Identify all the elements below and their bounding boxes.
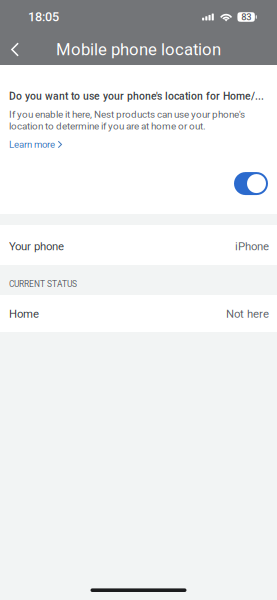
- staticText: Home: [9, 307, 39, 321]
- staticText: 18:05: [28, 10, 59, 24]
- staticText: iPhone: [235, 240, 269, 253]
- button[interactable]: Back: [0, 34, 30, 65]
- staticText: Your phone: [9, 240, 64, 253]
- button[interactable]: Use phone location: [234, 172, 268, 195]
- staticText: Not here: [226, 307, 269, 321]
- staticText: Mobile phone location: [56, 40, 221, 59]
- staticText: 83: [241, 11, 251, 22]
- staticText: Learn more: [9, 139, 55, 150]
- button[interactable]: Learn more: [9, 132, 62, 150]
- button[interactable]: Home: [0, 295, 277, 332]
- staticText: If you enable it here, Nest products can…: [9, 109, 245, 132]
- button[interactable]: Your phone: [0, 225, 277, 265]
- staticText: CURRENT STATUS: [9, 279, 77, 289]
- staticText: Do you want to use your phone's location…: [9, 90, 264, 102]
